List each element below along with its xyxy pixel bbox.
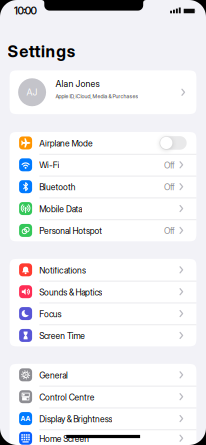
staticText: Screen Time xyxy=(39,331,85,341)
button[interactable]: Airplane Mode xyxy=(10,132,196,154)
staticText: Off xyxy=(164,160,175,171)
staticText: Airplane Mode xyxy=(39,138,93,149)
staticText: Sounds & Haptics xyxy=(39,287,102,297)
staticText: Off xyxy=(164,182,175,192)
staticText: Off xyxy=(164,226,175,236)
staticText: Personal Hotspot xyxy=(39,226,102,236)
staticText: Alan Jones xyxy=(55,78,99,89)
button[interactable]: Focus xyxy=(10,303,196,324)
staticText: 10:00 xyxy=(14,5,36,17)
button[interactable]: Notifications xyxy=(10,259,196,281)
staticText: Wi-Fi xyxy=(39,160,59,171)
staticText: Control Centre xyxy=(39,392,95,402)
button[interactable]: Personal Hotspot xyxy=(10,219,196,241)
staticText: Settings xyxy=(8,42,75,61)
staticText: Mobile Data xyxy=(39,204,82,214)
button[interactable]: AA xyxy=(10,408,196,429)
staticText: AA xyxy=(21,414,31,423)
staticText: Apple ID, iCloud, Media & Purchases xyxy=(55,93,138,100)
staticText: Notifications xyxy=(39,265,86,276)
button[interactable]: Wi-Fi xyxy=(10,154,196,176)
button[interactable]: AJ xyxy=(10,70,196,114)
staticText: Bluetooth xyxy=(39,182,76,192)
staticText: General xyxy=(39,370,68,381)
button[interactable]: Home Screen xyxy=(10,429,196,445)
staticText: Home Screen xyxy=(39,434,89,444)
staticText: Display & Brightness xyxy=(39,414,112,424)
button[interactable]: General xyxy=(10,364,196,386)
button[interactable]: Mobile Data xyxy=(10,198,196,219)
staticText: AJ xyxy=(27,87,38,98)
button[interactable]: Control Centre xyxy=(10,386,196,408)
button[interactable]: Screen Time xyxy=(10,324,196,346)
button[interactable]: Bluetooth xyxy=(10,176,196,198)
staticText: Focus xyxy=(39,309,61,319)
button[interactable]: Sounds & Haptics xyxy=(10,281,196,303)
